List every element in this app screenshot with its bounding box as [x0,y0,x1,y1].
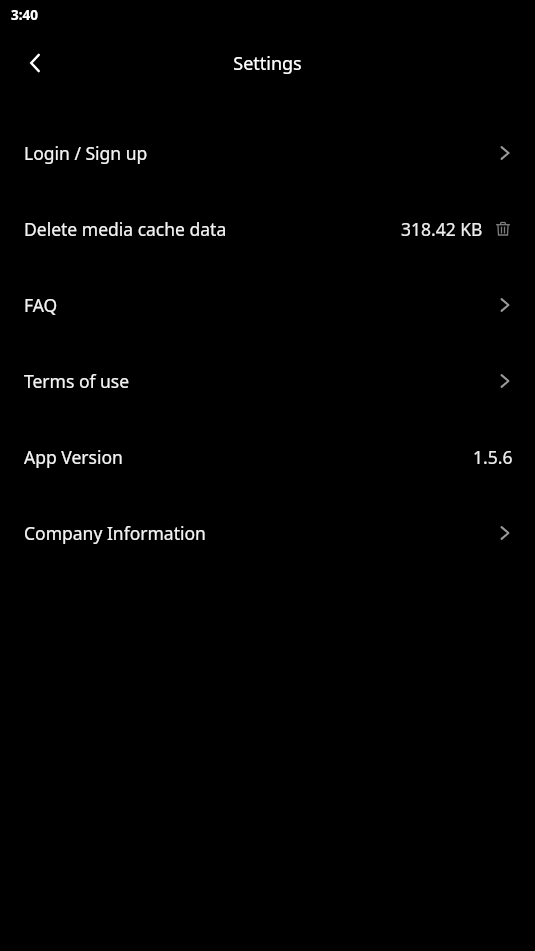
button[interactable]: FAQ [0,267,535,343]
staticText: Login / Sign up [24,141,148,165]
other: Delete media cache data [493,219,513,239]
other: Open Login / Sign up [493,141,517,165]
staticText: App Version [24,445,123,469]
staticText: 318.42 KB [401,217,483,241]
staticText: 3:40 [11,6,38,24]
staticText: Settings [233,51,302,76]
staticText: 1.5.6 [473,445,513,469]
button[interactable]: Terms of use [0,343,535,419]
button[interactable]: Login / Sign up [0,115,535,191]
button[interactable]: Back [18,46,52,80]
other: Open Company Information [493,521,517,545]
button[interactable]: Company Information [0,495,535,571]
other: Open Terms of use [493,369,517,393]
button[interactable]: Delete media cache data [0,191,535,267]
staticText: Delete media cache data [24,217,227,241]
staticText: FAQ [24,293,58,317]
staticText: Company Information [24,521,206,545]
button[interactable]: App Version [0,419,535,495]
staticText: Terms of use [24,369,130,393]
other: Open FAQ [493,293,517,317]
